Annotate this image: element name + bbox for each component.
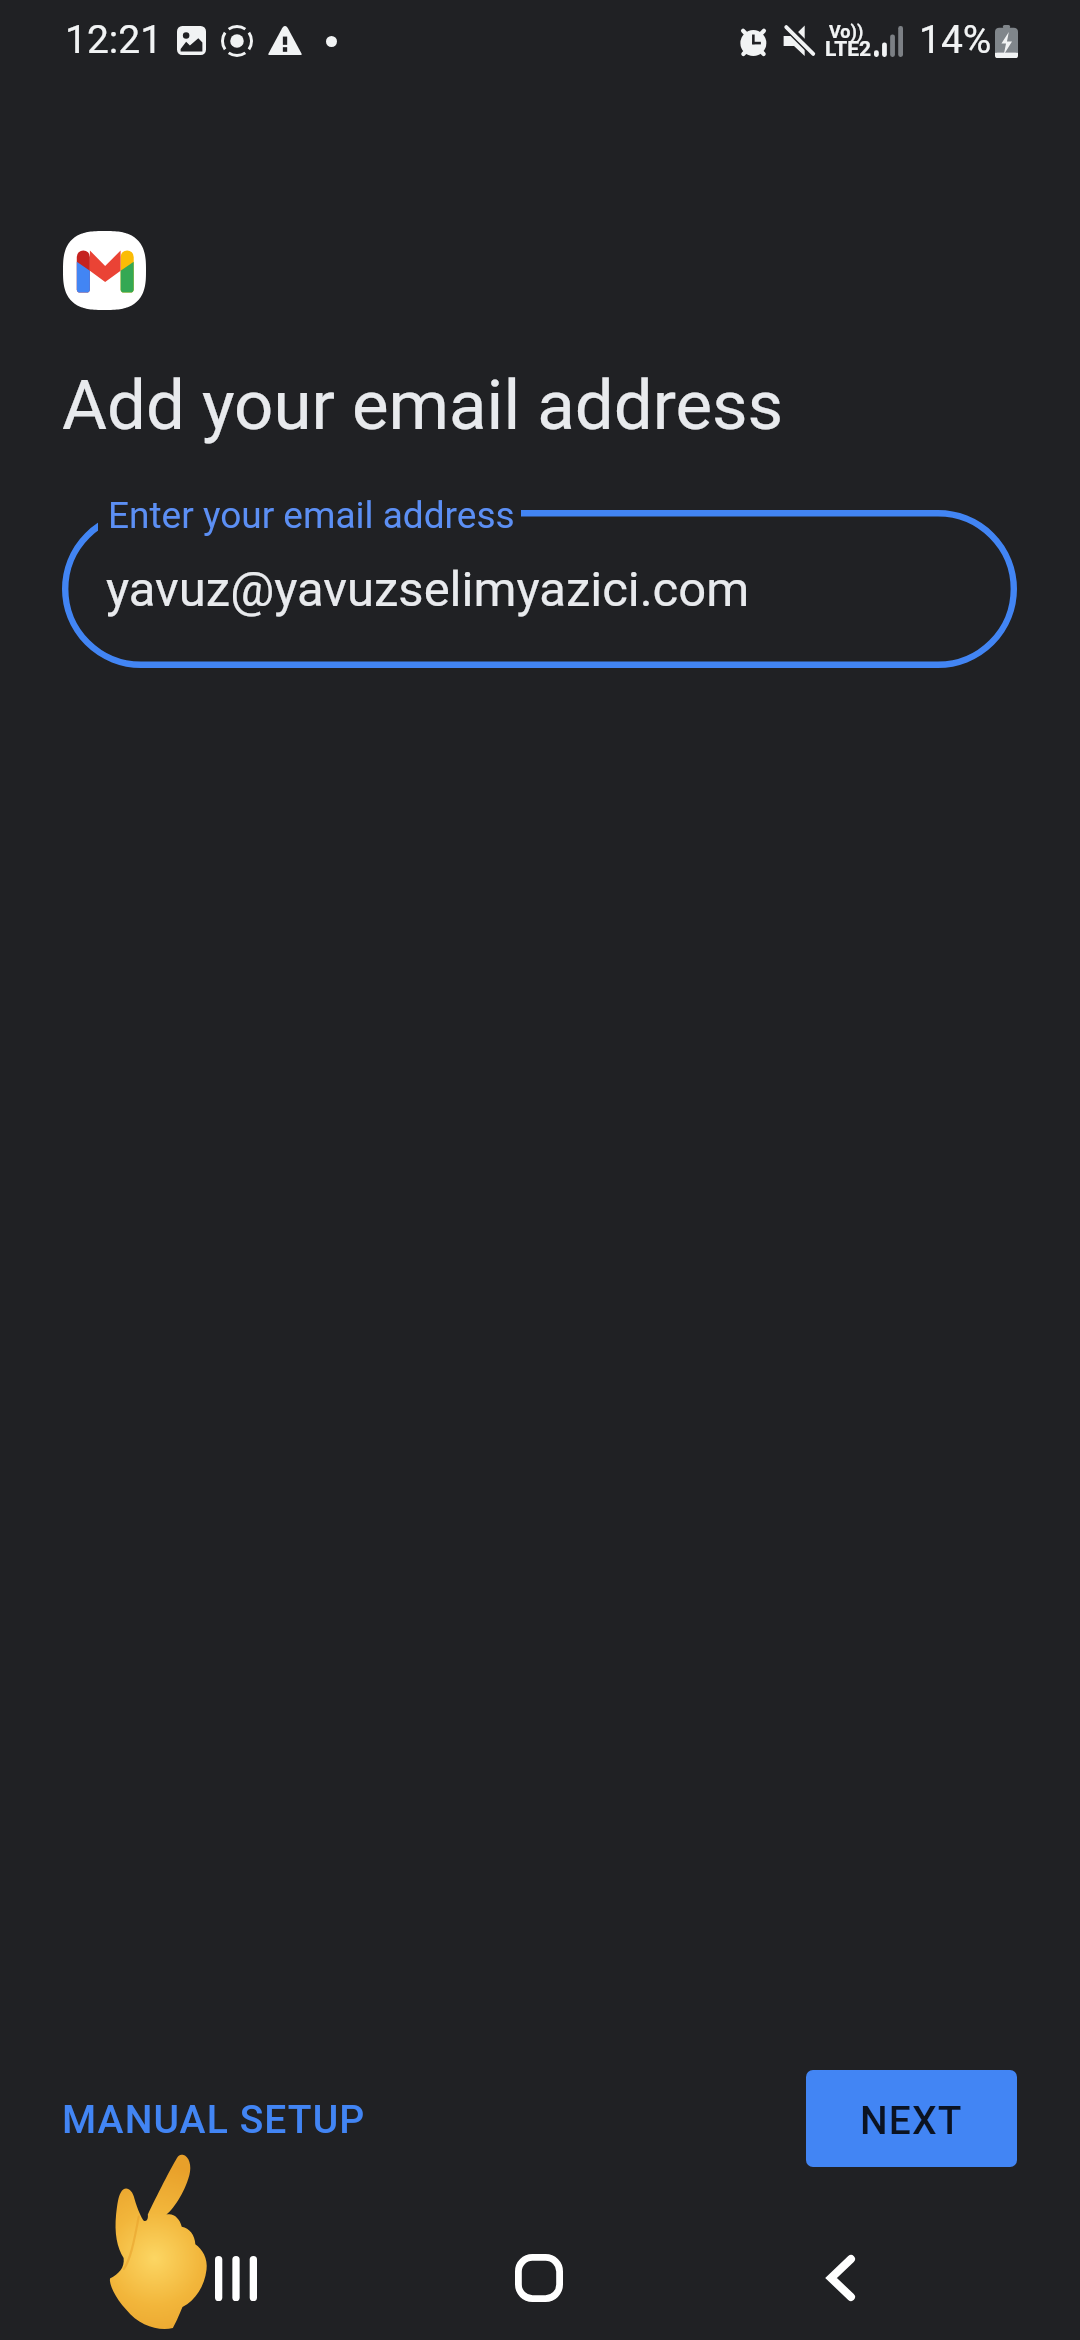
button[interactable]: Home <box>484 2223 594 2333</box>
staticText: Vo)) <box>829 21 864 42</box>
button[interactable]: NEXT <box>806 2070 1017 2167</box>
staticText: Add your email address <box>62 365 784 446</box>
button[interactable]: Recent apps <box>181 2223 291 2333</box>
button[interactable]: MANUAL SETUP <box>62 2097 366 2143</box>
staticText: NEXT <box>860 2098 963 2144</box>
staticText: Enter your email address <box>108 494 515 537</box>
staticText: yavuz@yavuzselimyazici.com <box>106 561 750 618</box>
staticText: 12:21 <box>65 17 163 63</box>
staticText: 14% <box>919 17 992 63</box>
staticText: LTE2 <box>825 37 872 62</box>
button[interactable]: Back <box>786 2223 896 2333</box>
staticText: MANUAL SETUP <box>62 2097 366 2143</box>
button[interactable]: yavuz@yavuzselimyazici.com <box>62 510 1017 668</box>
